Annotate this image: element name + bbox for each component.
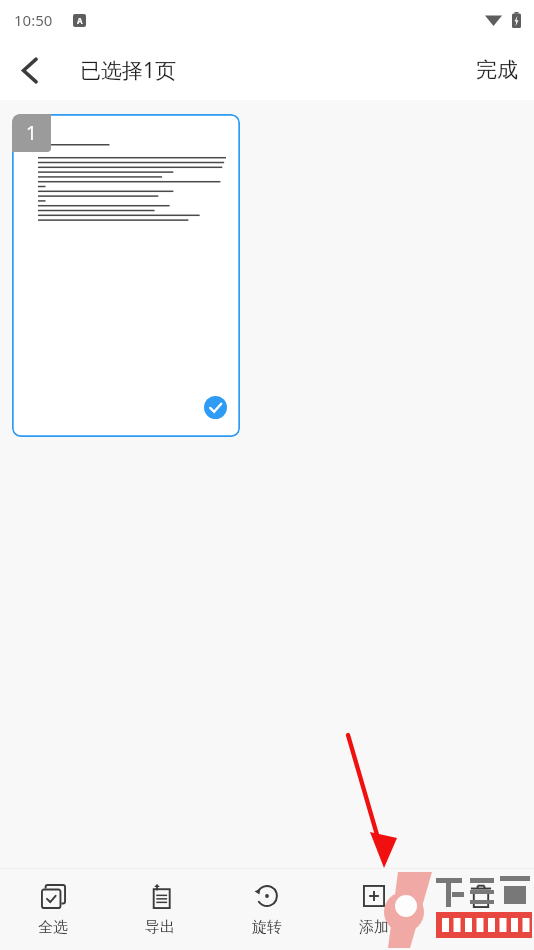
button[interactable]: 导出 <box>106 869 213 950</box>
button[interactable]: 删除 <box>427 869 534 950</box>
button[interactable]: 全选 <box>0 869 106 950</box>
staticText: 全选 <box>38 918 68 937</box>
staticText: 删除 <box>466 918 496 937</box>
staticText: 添加 <box>359 918 389 937</box>
button[interactable]: 旋转 <box>213 869 320 950</box>
button[interactable]: Back <box>6 46 54 94</box>
staticText: 旋转 <box>252 918 282 937</box>
staticText: 1 <box>26 120 37 146</box>
button[interactable]: 添加 <box>320 869 427 950</box>
staticText: 导出 <box>145 918 175 937</box>
staticText: A <box>77 15 83 26</box>
button[interactable]: 完成 <box>460 45 534 95</box>
staticText: 完成 <box>476 57 518 83</box>
staticText: 已选择1页 <box>80 56 177 85</box>
staticText: 10:50 <box>14 10 53 30</box>
button[interactable]: 1 <box>12 114 240 437</box>
